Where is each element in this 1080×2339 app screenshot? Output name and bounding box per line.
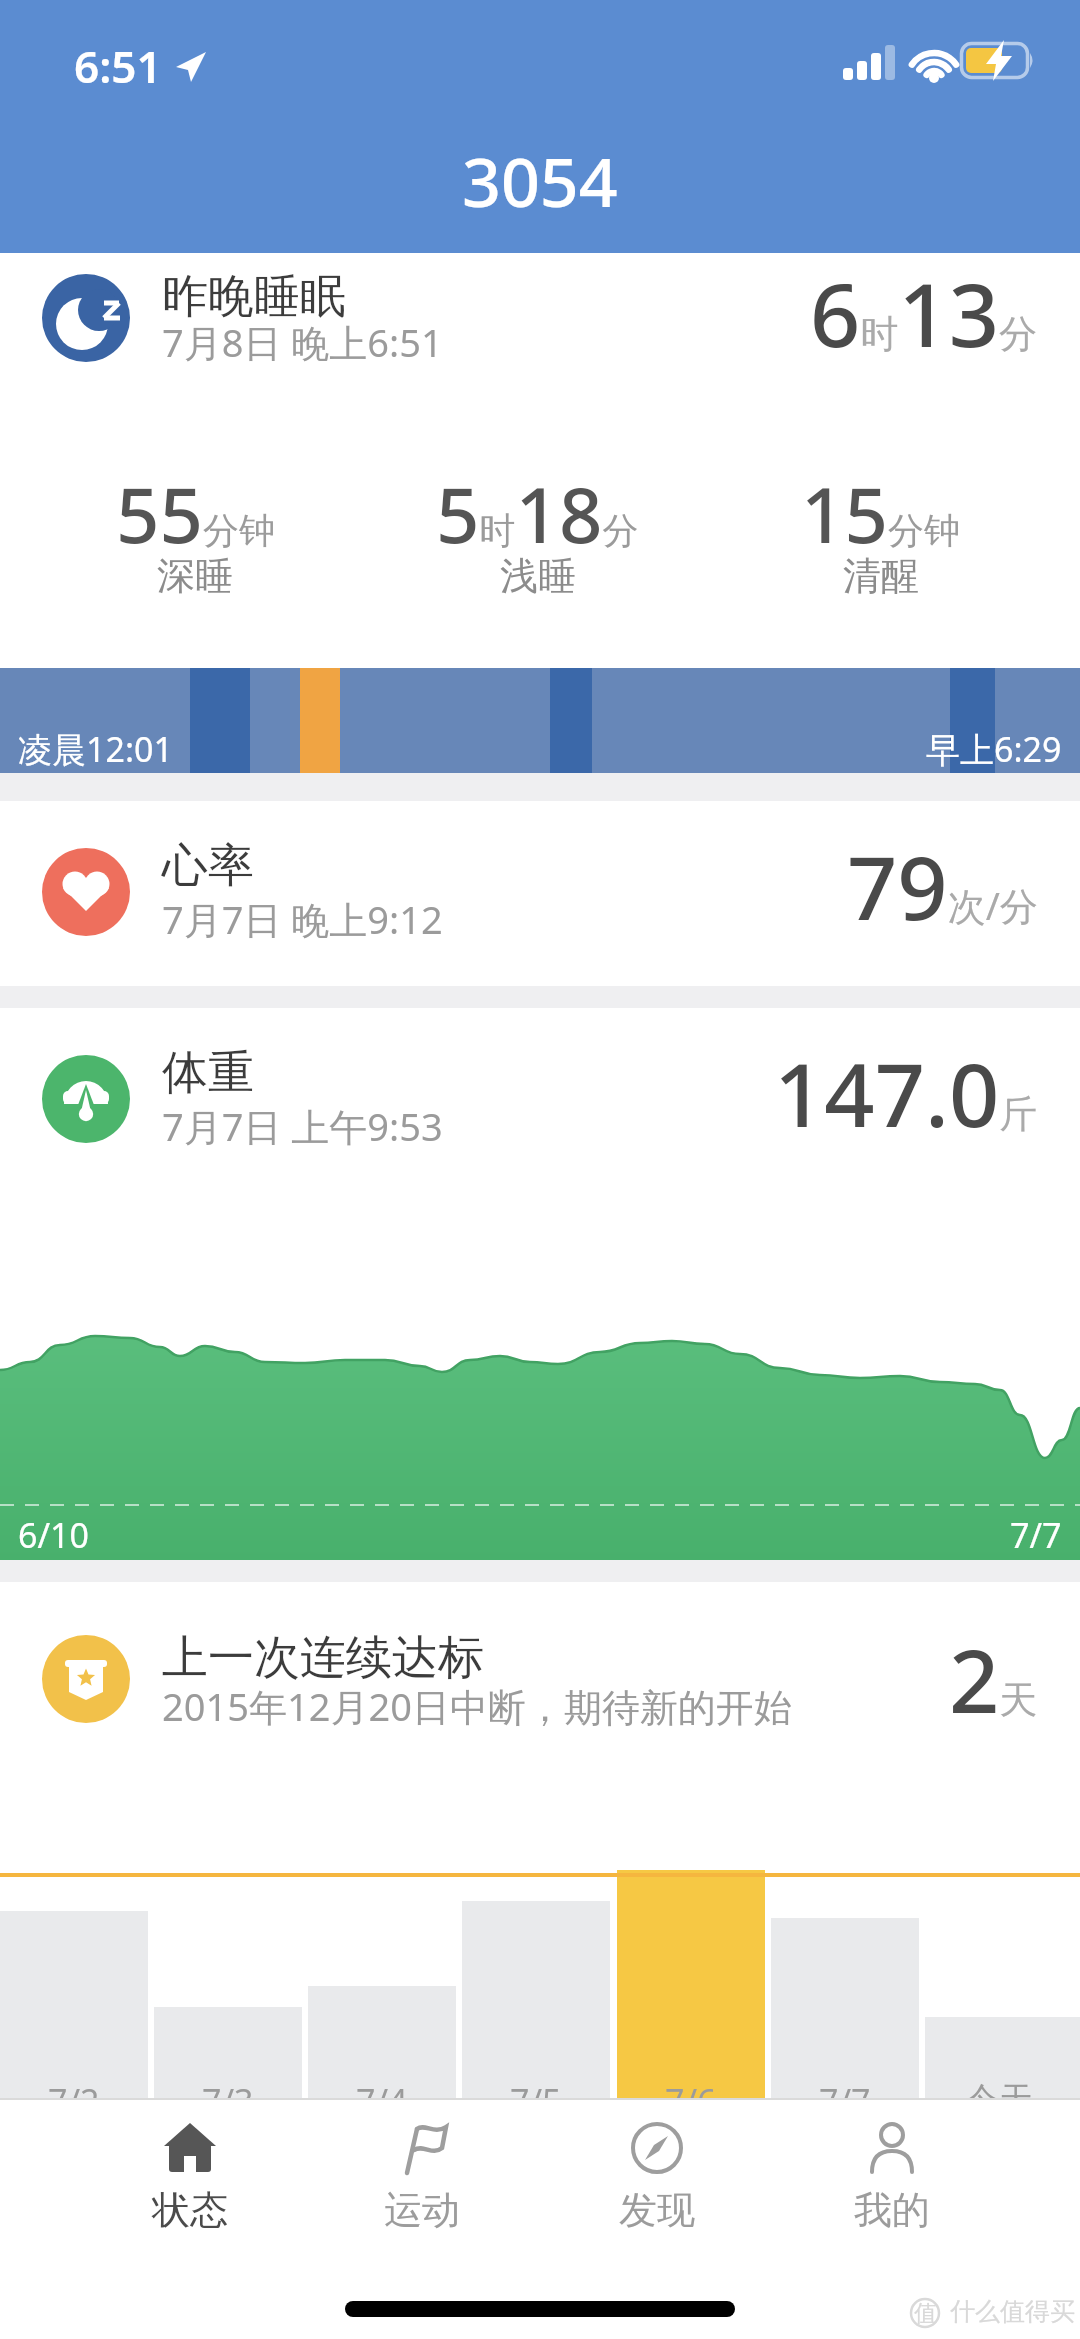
staticText: 7月7日 上午9:53 — [162, 1100, 443, 1152]
button[interactable]: 发现 — [587, 2120, 727, 2270]
staticText: 6/10 — [18, 1512, 89, 1558]
staticText: 清醒 — [843, 552, 919, 600]
staticText: 昨晚睡眠 — [162, 268, 346, 326]
button[interactable]: 心率 — [0, 801, 1080, 986]
button[interactable]: 上一次连续达标 — [0, 1582, 1080, 2098]
staticText: 7/2 — [48, 2078, 100, 2098]
staticText: 运动 — [384, 2186, 460, 2234]
staticText: 上一次连续达标 — [162, 1629, 484, 1687]
staticText: 发现 — [619, 2186, 695, 2234]
button[interactable]: 状态 — [120, 2120, 260, 2270]
staticText: 值 — [914, 2299, 937, 2328]
staticText: 深睡 — [157, 552, 233, 600]
staticText: 体重 — [162, 1044, 254, 1102]
staticText: 7/3 — [202, 2078, 254, 2098]
staticText: 7/6 — [665, 2078, 717, 2098]
staticText: 2天 — [949, 1619, 1038, 1739]
staticText: 5时18分 — [436, 462, 639, 566]
staticText: 早上6:29 — [926, 726, 1062, 772]
staticText: 今天 — [965, 2078, 1033, 2098]
staticText: 7月8日 晚上6:51 — [162, 316, 443, 368]
staticText: 147.0斤 — [774, 1033, 1038, 1153]
button[interactable]: 运动 — [352, 2120, 492, 2270]
staticText: 15分钟 — [801, 462, 960, 566]
staticText: 3054 — [462, 134, 618, 227]
button[interactable]: 昨晚睡眠 — [0, 253, 1080, 668]
button[interactable]: 体重 — [0, 1008, 1080, 1560]
button[interactable]: 我的 — [822, 2120, 962, 2270]
staticText: 心率 — [162, 837, 254, 895]
staticText: 浅睡 — [500, 552, 576, 600]
staticText: 我的 — [854, 2186, 930, 2234]
staticText: 7/4 — [356, 2078, 408, 2098]
staticText: 凌晨12:01 — [18, 726, 173, 772]
staticText: 2015年12月20日中断，期待新的开始 — [162, 1680, 792, 1732]
staticText: 状态 — [152, 2186, 228, 2234]
staticText: 7/5 — [510, 2078, 562, 2098]
staticText: 7月7日 晚上9:12 — [162, 893, 443, 945]
staticText: 7/7 — [819, 2078, 871, 2098]
staticText: 55分钟 — [116, 462, 275, 566]
staticText: 7/7 — [1010, 1512, 1062, 1558]
staticText: 79次/分 — [847, 826, 1038, 946]
staticText: 6:51 — [74, 36, 162, 96]
staticText: 什么值得买 — [950, 2296, 1075, 2327]
staticText: 6时13分 — [810, 253, 1038, 373]
